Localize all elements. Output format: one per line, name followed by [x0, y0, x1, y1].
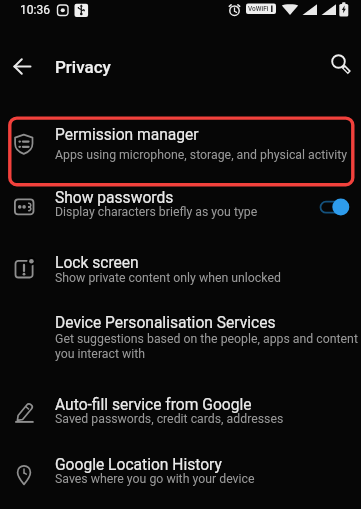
button[interactable]: Lock screen [0, 246, 361, 306]
button[interactable] [318, 42, 358, 82]
staticText: Show passwords [55, 189, 174, 207]
staticText: Device Personalisation Services [55, 314, 276, 332]
staticText: Permission manager [55, 126, 199, 144]
button[interactable]: Auto-fill service from Google [0, 384, 361, 444]
staticText: Google Location History [55, 456, 222, 474]
staticText: Auto-fill service from Google [55, 396, 252, 414]
button[interactable]: Device Personalisation Services [0, 306, 361, 384]
staticText: Privacy [55, 57, 111, 77]
staticText: Show private content only when unlocked [55, 271, 281, 285]
staticText: 10:36 [20, 3, 50, 17]
staticText: Apps using microphone, storage, and phys… [55, 148, 347, 162]
button[interactable]: Permission manager [0, 108, 361, 184]
button[interactable]: Google Location History [0, 444, 361, 509]
staticText: Saved passwords, credit cards, addresses [55, 412, 284, 426]
staticText: Lock screen [55, 254, 139, 272]
button[interactable]: Show passwords [0, 184, 361, 246]
staticText: you interact with [55, 347, 146, 361]
staticText: Saves where you go with your device [55, 472, 255, 486]
staticText: Display characters briefly as you type [55, 205, 258, 219]
staticText: Get suggestions based on the people, app… [55, 332, 358, 346]
button[interactable] [2, 46, 42, 86]
staticText: VoWiFi [248, 5, 269, 13]
